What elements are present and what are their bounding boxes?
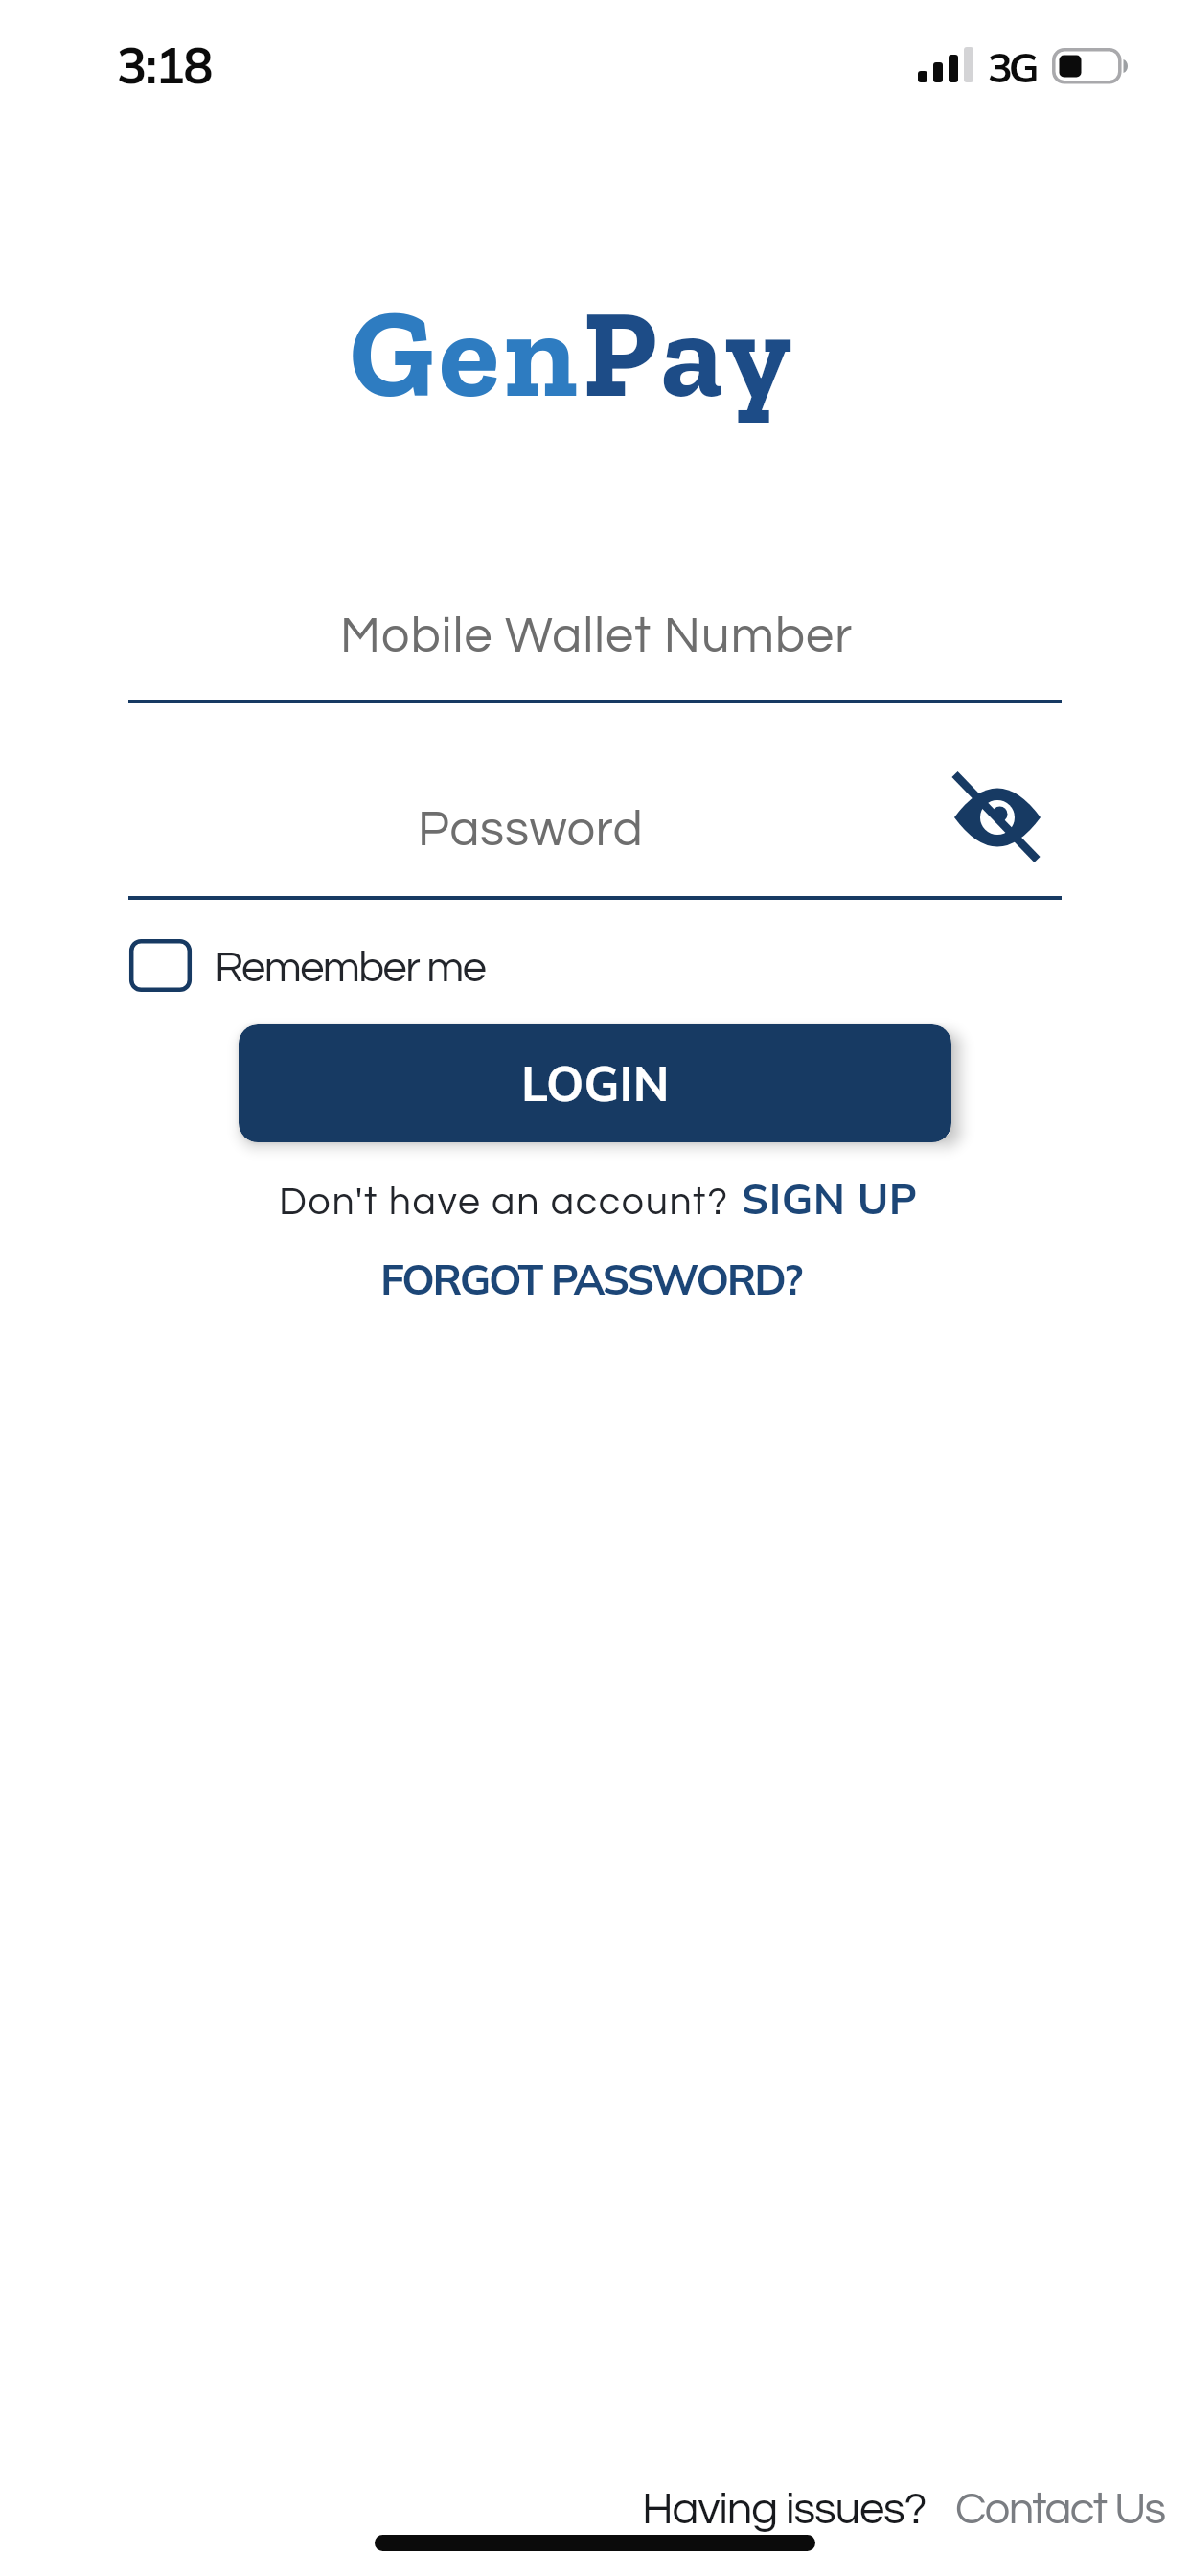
button[interactable]: Contact Us xyxy=(948,2478,1157,2524)
staticText: 3:18 xyxy=(117,34,212,96)
button[interactable]: Remember me xyxy=(129,930,532,1001)
staticText: Remember me xyxy=(215,946,486,990)
staticText: Don't have an account? xyxy=(279,1182,729,1222)
button[interactable] xyxy=(954,773,1042,862)
staticText: Mobile Wallet Number xyxy=(340,610,854,662)
button[interactable]: FORGOT PASSWORD? xyxy=(373,1245,794,1298)
staticText: FORGOT PASSWORD? xyxy=(380,1253,802,1305)
button[interactable]: SIGN UP xyxy=(734,1164,910,1217)
staticText: LOGIN xyxy=(521,1053,670,1114)
staticText: Contact Us xyxy=(955,2486,1165,2532)
staticText: 3G xyxy=(988,41,1036,93)
button[interactable]: LOGIN xyxy=(239,1024,951,1142)
button[interactable]: Password xyxy=(128,767,1062,900)
staticText: GenPay xyxy=(350,278,796,427)
staticText: SIGN UP xyxy=(742,1172,918,1225)
staticText: Having issues? xyxy=(642,2486,927,2532)
button[interactable]: Mobile Wallet Number xyxy=(128,575,1062,703)
staticText: Password xyxy=(418,804,644,856)
